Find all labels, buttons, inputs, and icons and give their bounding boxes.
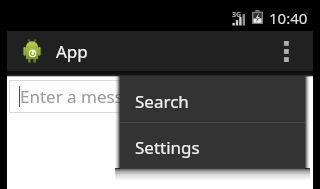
staticText: Settings: [135, 136, 200, 159]
button[interactable]: More options: [259, 31, 313, 71]
staticText: 3G: [232, 10, 242, 20]
button[interactable]: Search: [120, 76, 305, 122]
staticText: 10:40: [269, 8, 308, 28]
button[interactable]: Settings: [120, 123, 305, 168]
button[interactable]: Enter a message: [9, 80, 305, 113]
staticText: Enter a message: [20, 85, 153, 108]
staticText: App: [56, 40, 88, 63]
staticText: Search: [135, 90, 189, 113]
